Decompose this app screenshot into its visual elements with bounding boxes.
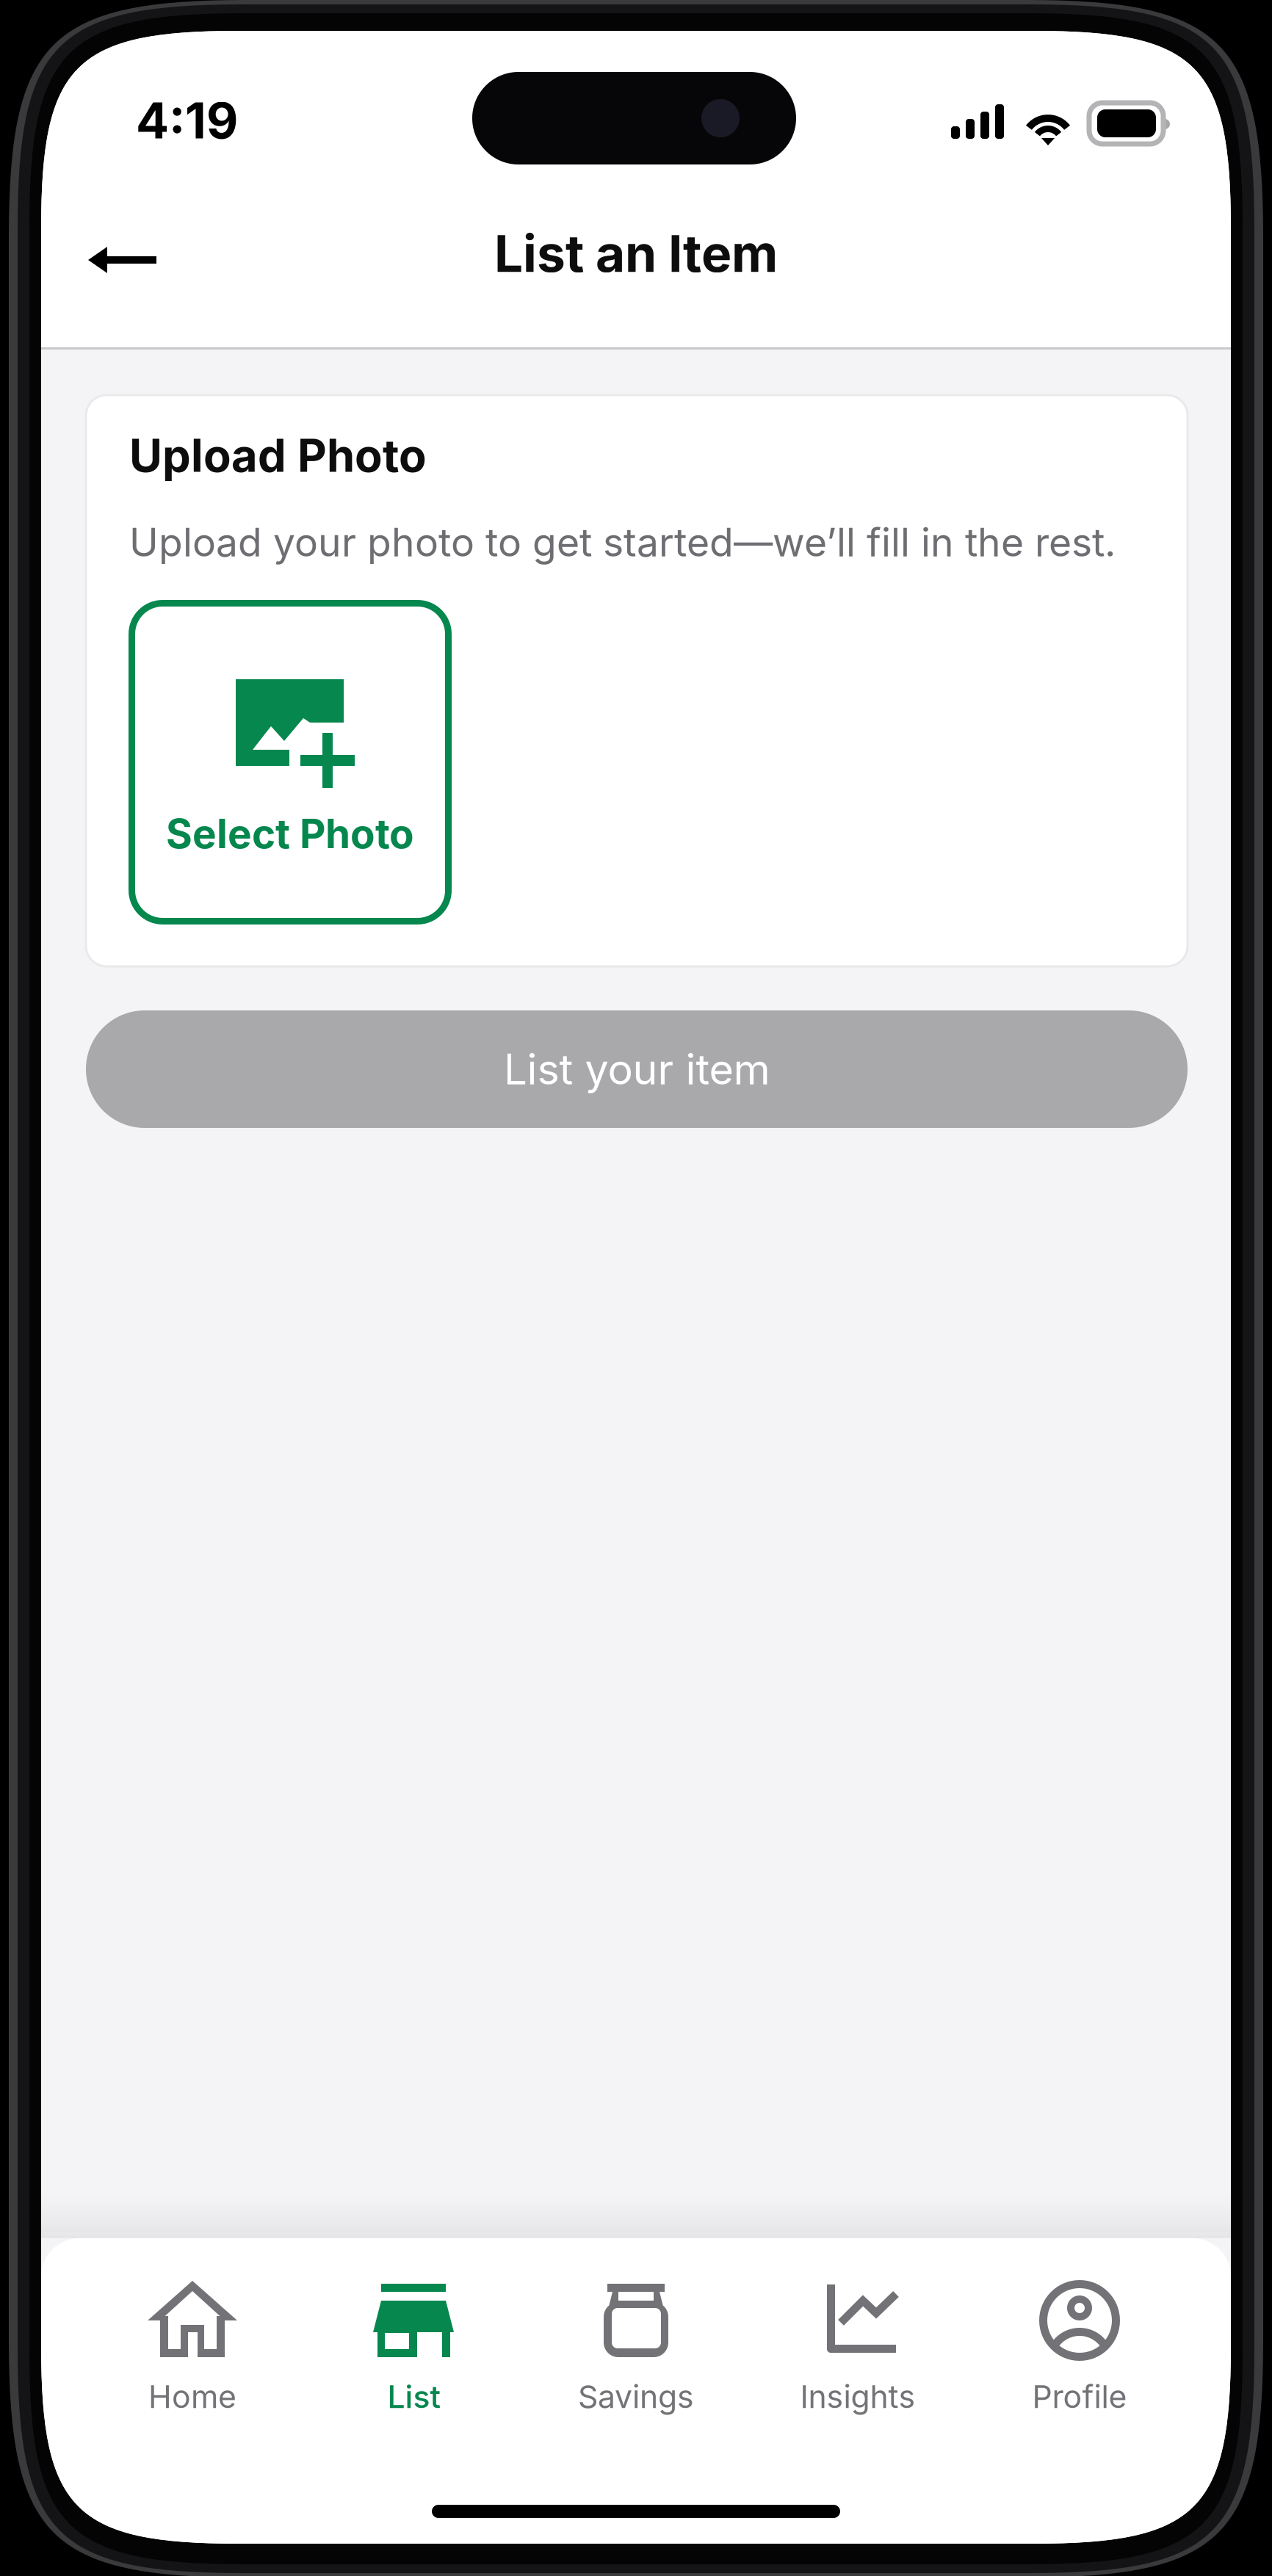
- button[interactable]: List: [303, 2280, 525, 2420]
- staticText: 4:19: [136, 91, 238, 150]
- staticText: Upload Photo: [129, 428, 427, 483]
- staticText: Upload your photo to get started—we’ll f…: [129, 518, 1116, 566]
- staticText: List an Item: [494, 222, 778, 284]
- staticText: Profile: [1032, 2378, 1127, 2416]
- button[interactable]: Profile: [969, 2280, 1190, 2420]
- button[interactable]: List your item: [86, 1010, 1188, 1128]
- staticText: Insights: [800, 2378, 915, 2416]
- staticText: List your item: [503, 1044, 770, 1095]
- button[interactable]: Insights: [747, 2280, 969, 2420]
- staticText: Home: [148, 2378, 236, 2416]
- button[interactable]: Savings: [525, 2280, 747, 2420]
- button[interactable]: Select Photo: [129, 600, 452, 925]
- staticText: Savings: [578, 2378, 694, 2416]
- staticText: Select Photo: [166, 809, 414, 858]
- button[interactable]: Home: [82, 2280, 303, 2420]
- button[interactable]: Back: [81, 198, 204, 322]
- staticText: List: [387, 2378, 441, 2416]
